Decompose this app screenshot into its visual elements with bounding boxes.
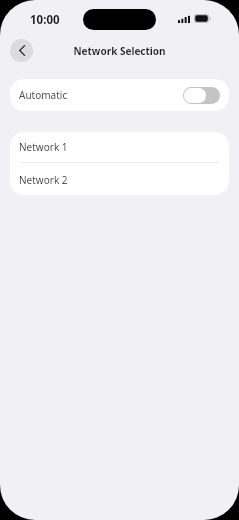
button[interactable]: Network 2 [10, 163, 229, 195]
button[interactable]: Automatic network selection toggle [183, 87, 220, 104]
staticText: Automatic [19, 88, 68, 102]
button[interactable]: Back [10, 39, 33, 62]
staticText: 10:00 [30, 12, 60, 28]
staticText: Network 1 [19, 140, 68, 154]
button[interactable]: Network 1 [10, 132, 229, 163]
staticText: Network Selection [73, 44, 166, 58]
button[interactable]: Automatic [10, 79, 229, 111]
staticText: Network 2 [19, 173, 68, 187]
